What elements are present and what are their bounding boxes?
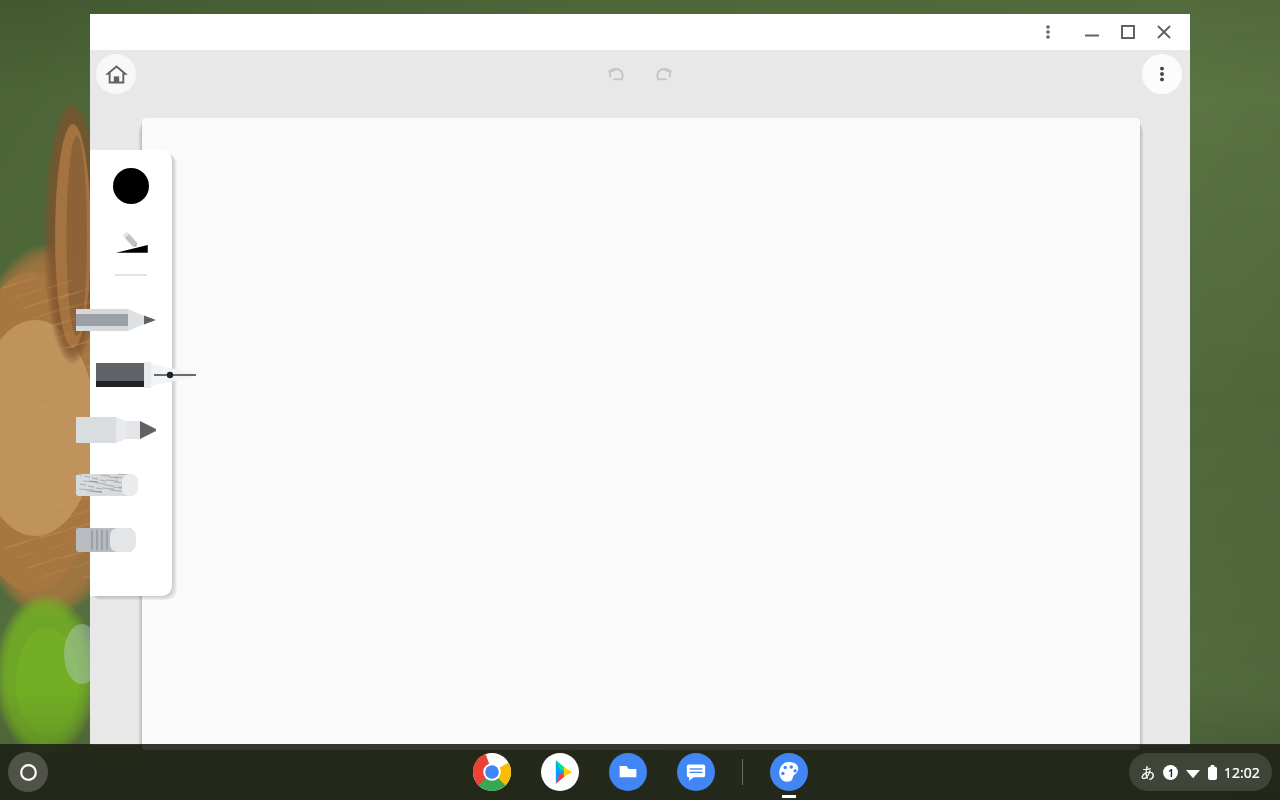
button[interactable]: Drawing tool <box>90 292 172 347</box>
button[interactable]: Canvas <box>767 746 811 798</box>
button[interactable]: Drawing tool <box>90 402 172 457</box>
button[interactable]: Home <box>96 54 136 94</box>
button[interactable]: More options <box>1142 54 1182 94</box>
button[interactable]: Minimize <box>1074 14 1110 50</box>
button[interactable]: Colour: black <box>113 168 149 204</box>
button[interactable]: Maximize <box>1110 14 1146 50</box>
button[interactable]: Messages <box>674 746 718 798</box>
button[interactable]: Redo <box>644 54 684 94</box>
staticText: 1 <box>1168 766 1174 780</box>
button[interactable]: Drawing tool <box>90 347 172 402</box>
button[interactable]: Files <box>606 746 650 798</box>
button[interactable]: Stroke width <box>109 224 153 260</box>
staticText: 12:02 <box>1224 763 1260 782</box>
button[interactable]: Undo <box>596 54 636 94</box>
button[interactable]: System tray <box>1129 753 1272 791</box>
button[interactable]: Launcher <box>8 752 48 792</box>
button[interactable]: Drawing tool <box>90 457 172 512</box>
button[interactable]: Drawing tool <box>90 512 172 567</box>
button[interactable] <box>142 118 1140 750</box>
button[interactable]: Window menu <box>1030 14 1066 50</box>
staticText: あ <box>1141 764 1156 782</box>
button[interactable]: Chrome <box>470 746 514 798</box>
button[interactable]: Close <box>1146 14 1182 50</box>
button[interactable]: Play Store <box>538 746 582 798</box>
